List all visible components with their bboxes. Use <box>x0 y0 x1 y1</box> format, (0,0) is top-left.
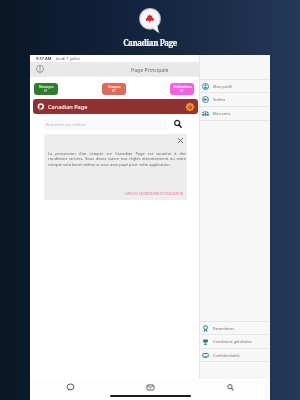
button[interactable]: Groupes <box>102 83 126 95</box>
staticText: 9:57 AM <box>36 56 52 61</box>
button[interactable]: Courrier <box>110 380 190 394</box>
staticText: Mon profil <box>213 84 232 89</box>
button[interactable]: Mon profil <box>199 79 270 93</box>
staticText: La possession d'un compte sur Canadian P… <box>48 151 186 168</box>
staticText: 11 <box>112 89 116 93</box>
staticText: Messages <box>39 85 54 89</box>
staticText: Canadian Page <box>48 103 88 111</box>
staticText: Recherche par critères <box>46 122 86 127</box>
button[interactable]: Confidentialité <box>199 348 270 362</box>
staticText: Vidéos <box>213 97 226 102</box>
staticText: Notifications <box>173 85 192 89</box>
staticText: 11 <box>180 89 184 93</box>
button[interactable]: LIRE LES CONDITIONS D'UTILISATION <box>125 191 184 195</box>
staticText: 11 <box>44 89 48 93</box>
staticText: Paramètres <box>213 326 235 331</box>
staticText: Conditions générales <box>213 339 252 344</box>
button[interactable]: Mes amis <box>199 106 270 120</box>
button[interactable]: Recherche <box>190 380 270 394</box>
button[interactable]: Conditions générales <box>199 334 270 348</box>
button[interactable]: Canadian Page <box>33 99 198 114</box>
button[interactable]: Messages <box>34 83 58 95</box>
button[interactable]: Paramètres <box>199 321 270 335</box>
staticText: Groupes <box>108 85 121 89</box>
button[interactable]: Fermer <box>175 135 186 146</box>
staticText: Confidentialité <box>213 353 240 358</box>
button[interactable]: Messages <box>30 380 110 394</box>
staticText: Canadian Page <box>0 37 300 48</box>
button[interactable]: Rechercher <box>172 118 184 130</box>
staticText: Jeudi 7 juillet <box>56 56 80 61</box>
button[interactable]: Vidéos <box>199 92 270 106</box>
staticText: Page Principale <box>131 66 169 73</box>
button[interactable]: Notifications <box>170 83 194 95</box>
button[interactable]: Recherche par critères <box>43 119 167 130</box>
button[interactable]: Informations <box>33 62 47 76</box>
staticText: Mes amis <box>213 111 231 116</box>
